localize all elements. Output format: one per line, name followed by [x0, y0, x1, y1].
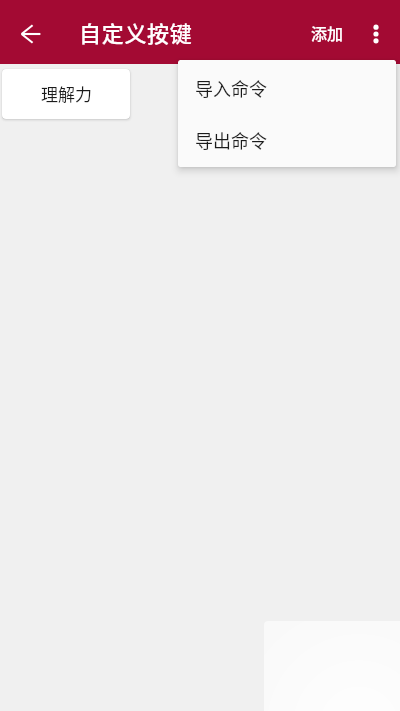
- button[interactable]: 导出命令: [178, 113, 396, 166]
- staticText: 自定义按键: [79, 16, 193, 48]
- staticText: 导入命令: [195, 75, 267, 101]
- button[interactable]: 添加: [299, 10, 356, 54]
- button[interactable]: 理解力: [2, 69, 130, 119]
- button[interactable]: More options: [353, 12, 399, 56]
- staticText: 理解力: [41, 81, 92, 106]
- button[interactable]: Back: [7, 10, 55, 58]
- staticText: 添加: [311, 21, 344, 44]
- staticText: 导出命令: [195, 127, 267, 153]
- button[interactable]: 导入命令: [178, 61, 396, 114]
